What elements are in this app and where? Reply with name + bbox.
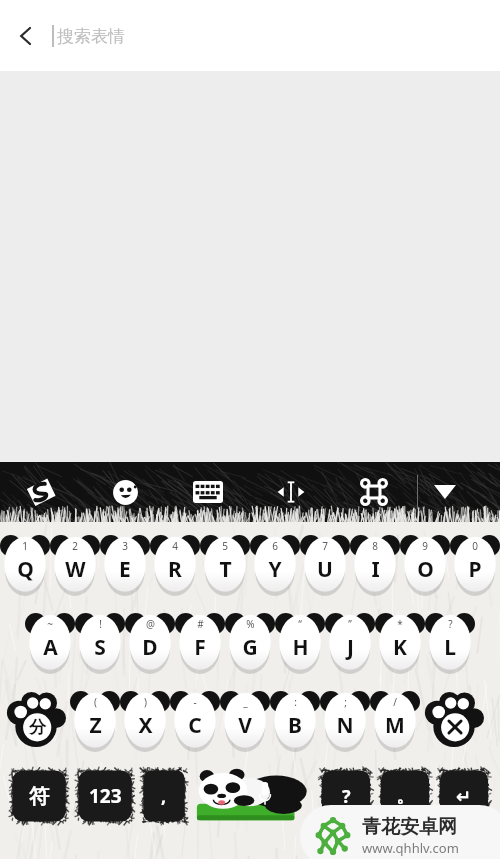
staticText: 6 xyxy=(272,539,278,553)
staticText: Y xyxy=(268,555,282,584)
button[interactable]: 123 xyxy=(74,764,136,828)
button[interactable]: ” xyxy=(325,610,375,674)
button[interactable]: * xyxy=(375,610,425,674)
button[interactable]: 0 xyxy=(450,532,500,596)
staticText: , xyxy=(161,784,167,809)
staticText: X xyxy=(138,711,153,740)
button[interactable]: Back xyxy=(0,0,52,71)
button[interactable]: 1 xyxy=(0,532,50,596)
staticText: B xyxy=(288,711,302,740)
button[interactable]: “ xyxy=(275,610,325,674)
staticText: Z xyxy=(89,711,102,740)
button[interactable]: 3 xyxy=(100,532,150,596)
staticText: _ xyxy=(243,695,248,709)
button[interactable]: _ xyxy=(220,688,270,752)
staticText: J xyxy=(347,633,354,662)
button[interactable]: / xyxy=(370,688,420,752)
staticText: % xyxy=(246,617,255,631)
staticText: P xyxy=(468,555,482,584)
button[interactable]: # xyxy=(175,610,225,674)
button[interactable]: Shift / split xyxy=(6,688,66,752)
staticText: 符 xyxy=(29,784,49,809)
staticText: 8 xyxy=(372,539,378,553)
staticText: 1 xyxy=(22,539,28,553)
button[interactable]: More functions xyxy=(347,462,401,522)
button[interactable]: 7 xyxy=(300,532,350,596)
staticText: “ xyxy=(298,617,302,631)
staticText: 搜索表情 xyxy=(57,26,125,47)
button[interactable]: Hide keyboard xyxy=(418,462,472,522)
staticText: ; xyxy=(344,695,347,709)
button[interactable]: : xyxy=(270,688,320,752)
staticText: C xyxy=(188,711,202,740)
button[interactable]: Sogou input xyxy=(14,462,68,522)
staticText: www.qhhlv.com xyxy=(362,839,459,857)
staticText: 分 xyxy=(29,717,46,738)
staticText: 3 xyxy=(122,539,128,553)
staticText: D xyxy=(142,633,158,662)
staticText: * xyxy=(397,617,403,631)
button[interactable]: Emoji xyxy=(98,462,152,522)
staticText: ) xyxy=(144,695,147,709)
staticText: ( xyxy=(94,695,97,709)
staticText: O xyxy=(417,555,434,584)
button[interactable]: 符 xyxy=(8,764,70,828)
staticText: 0 xyxy=(472,539,478,553)
staticText: L xyxy=(444,633,456,662)
staticText: A xyxy=(43,633,58,662)
staticText: 5 xyxy=(222,539,228,553)
button[interactable]: ( xyxy=(70,688,120,752)
button[interactable]: ; xyxy=(320,688,370,752)
button[interactable]: 4 xyxy=(150,532,200,596)
button[interactable]: ? xyxy=(318,764,374,828)
staticText: V xyxy=(238,711,252,740)
button[interactable]: @ xyxy=(125,610,175,674)
staticText: @ xyxy=(146,617,155,631)
button[interactable]: 9 xyxy=(400,532,450,596)
staticText: 123 xyxy=(89,783,122,809)
button[interactable]: , xyxy=(140,764,188,828)
staticText: H xyxy=(292,633,309,662)
staticText: ↵ xyxy=(456,786,472,807)
staticText: ” xyxy=(348,617,352,631)
staticText: E xyxy=(119,555,131,584)
button[interactable]: ? xyxy=(425,610,475,674)
button[interactable]: ) xyxy=(120,688,170,752)
staticText: N xyxy=(336,711,354,740)
staticText: # xyxy=(197,617,204,631)
staticText: 2 xyxy=(72,539,78,553)
staticText: T xyxy=(219,555,232,584)
button[interactable]: Space / voice input xyxy=(192,764,314,828)
button[interactable]: ~ xyxy=(25,610,75,674)
staticText: G xyxy=(242,633,258,662)
staticText: U xyxy=(317,555,333,584)
button[interactable]: Keyboard layout xyxy=(181,462,235,522)
button[interactable]: 。 xyxy=(377,764,433,828)
staticText: S xyxy=(94,633,106,662)
staticText: K xyxy=(393,633,407,662)
staticText: 9 xyxy=(422,539,428,553)
button[interactable]: 2 xyxy=(50,532,100,596)
staticText: 7 xyxy=(322,539,328,553)
staticText: ? xyxy=(342,784,351,809)
staticText: 4 xyxy=(172,539,178,553)
staticText: ! xyxy=(99,617,102,631)
button[interactable]: Backspace xyxy=(424,688,484,752)
button[interactable]: % xyxy=(225,610,275,674)
button[interactable]: ! xyxy=(75,610,125,674)
staticText: Q xyxy=(17,555,34,584)
button[interactable]: 6 xyxy=(250,532,300,596)
staticText: M xyxy=(385,711,405,740)
staticText: I xyxy=(371,555,380,584)
staticText: / xyxy=(393,695,397,709)
button[interactable]: ↵ xyxy=(436,764,492,828)
button[interactable]: 8 xyxy=(350,532,400,596)
button[interactable]: - xyxy=(170,688,220,752)
staticText: : xyxy=(294,695,297,709)
staticText: ~ xyxy=(47,617,53,631)
staticText: - xyxy=(193,695,197,709)
button[interactable]: 5 xyxy=(200,532,250,596)
staticText: 青花安卓网 xyxy=(362,815,457,839)
button[interactable]: Move cursor xyxy=(264,462,318,522)
staticText: F xyxy=(194,633,206,662)
